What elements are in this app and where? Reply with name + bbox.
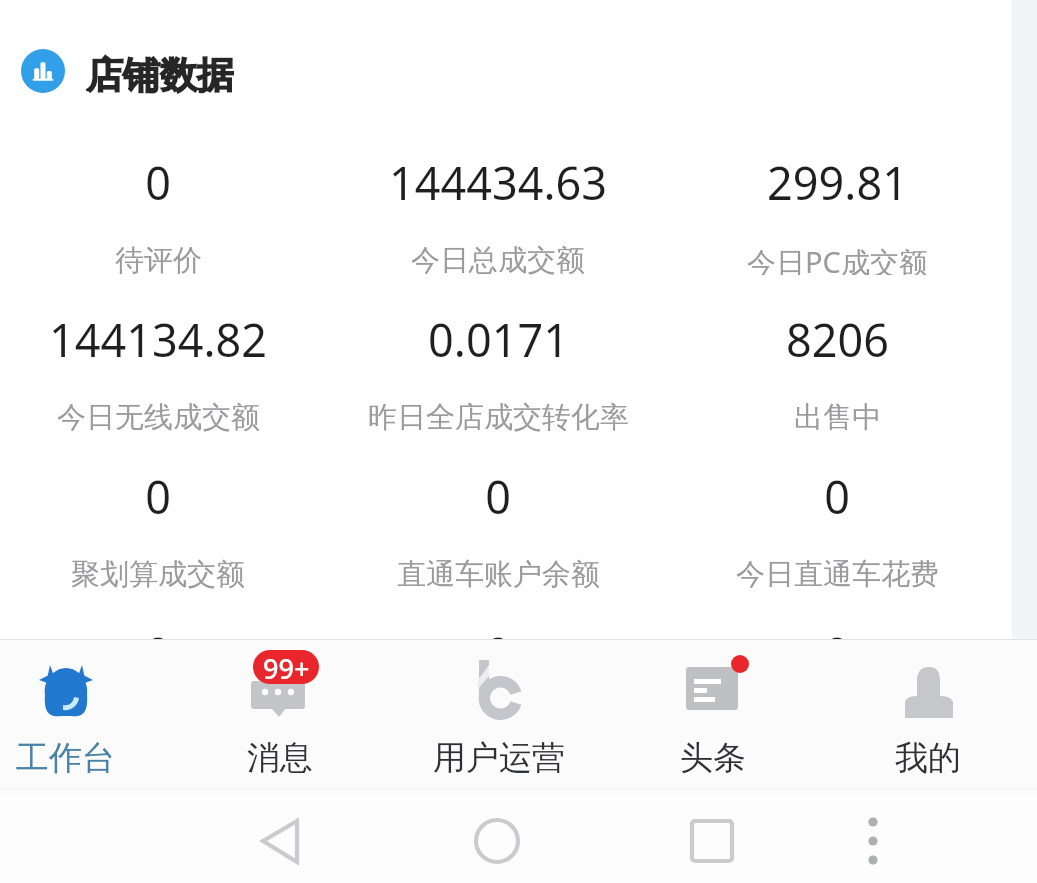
staticText: 用户运营 xyxy=(433,737,565,779)
button[interactable]: 144134.82 xyxy=(0,275,318,432)
staticText: 头条 xyxy=(680,737,746,779)
staticText: 0 xyxy=(485,623,511,684)
staticText: 客服工作量 xyxy=(86,713,231,746)
staticText: 0 xyxy=(145,623,171,684)
button[interactable]: 0 xyxy=(0,118,318,275)
button[interactable]: Messages xyxy=(173,640,387,795)
staticText: 0 xyxy=(485,466,511,527)
staticText: 0.0171 xyxy=(428,309,569,370)
staticText: 299.81 xyxy=(767,152,908,213)
staticText: 消息 xyxy=(247,737,313,779)
staticText: 待评价 xyxy=(115,242,202,275)
button[interactable]: 8206 xyxy=(677,275,997,432)
staticText: 直通车账户余额 xyxy=(397,556,600,589)
button[interactable]: 0 xyxy=(0,432,318,589)
staticText: 0 xyxy=(824,466,850,527)
button[interactable]: 0 xyxy=(338,432,658,589)
staticText: 99+ xyxy=(263,650,310,684)
staticText: 8206 xyxy=(786,309,889,370)
button[interactable]: 0 xyxy=(677,432,997,589)
staticText: 我的 xyxy=(895,737,961,779)
button[interactable]: 0 xyxy=(338,589,658,746)
button[interactable]: 店铺数据 xyxy=(21,52,234,97)
staticText: 今日退款 xyxy=(440,713,556,746)
button[interactable]: 144434.63 xyxy=(338,118,658,275)
button[interactable]: 0 xyxy=(0,589,318,746)
button[interactable]: Headlines xyxy=(606,640,820,795)
staticText: 144434.63 xyxy=(389,152,607,213)
staticText: 144134.82 xyxy=(49,309,267,370)
button[interactable]: 0.0171 xyxy=(338,275,658,432)
staticText: 店铺数据 xyxy=(86,52,234,97)
staticText: 0 xyxy=(824,623,850,684)
staticText: 今日PC成交额 xyxy=(747,242,928,275)
button[interactable]: Workbench xyxy=(0,640,172,795)
staticText: 0 xyxy=(145,152,171,213)
button[interactable]: 299.81 xyxy=(677,118,997,275)
staticText: 工作台 xyxy=(16,737,115,779)
staticText: 今日总成交额 xyxy=(411,242,585,275)
button[interactable]: 0 xyxy=(677,589,997,746)
staticText: 今日直通车花费 xyxy=(736,556,939,589)
button[interactable]: Profile xyxy=(821,640,1035,795)
staticText: 出售中 xyxy=(794,399,881,432)
button[interactable]: User operations xyxy=(392,640,606,795)
staticText: 0 xyxy=(145,466,171,527)
staticText: 聚划算成交额 xyxy=(71,556,245,589)
staticText: 昨日全店成交转化率 xyxy=(368,399,629,432)
staticText: 今日无线成交额 xyxy=(57,399,260,432)
